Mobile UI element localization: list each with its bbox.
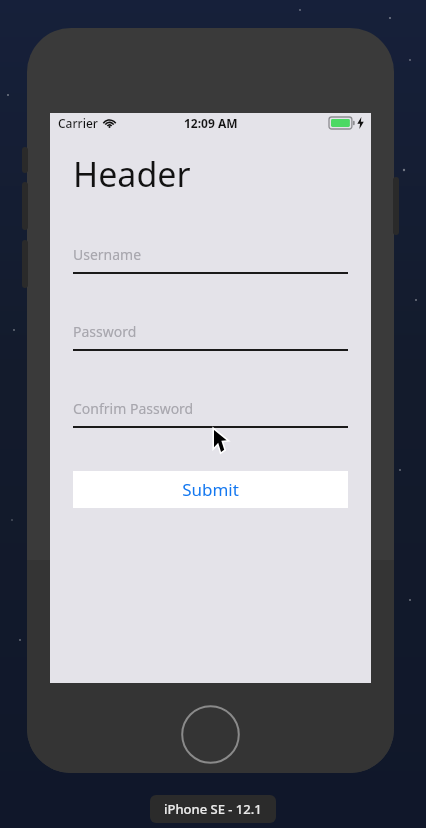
staticText: iPhone SE - 12.1 xyxy=(164,800,262,818)
staticText: Username xyxy=(73,245,142,264)
button[interactable]: Submit xyxy=(73,471,348,508)
button[interactable]: iPhone SE - 12.1 xyxy=(150,795,276,823)
staticText: Header xyxy=(73,151,191,197)
staticText: Confrim Password xyxy=(73,399,194,418)
staticText: Submit xyxy=(182,478,239,501)
staticText: Carrier xyxy=(58,115,98,131)
staticText: 12:09 AM xyxy=(184,115,238,131)
other: Silent switch xyxy=(22,147,28,173)
staticText: Password xyxy=(73,322,137,341)
button[interactable]: Home xyxy=(181,705,240,764)
